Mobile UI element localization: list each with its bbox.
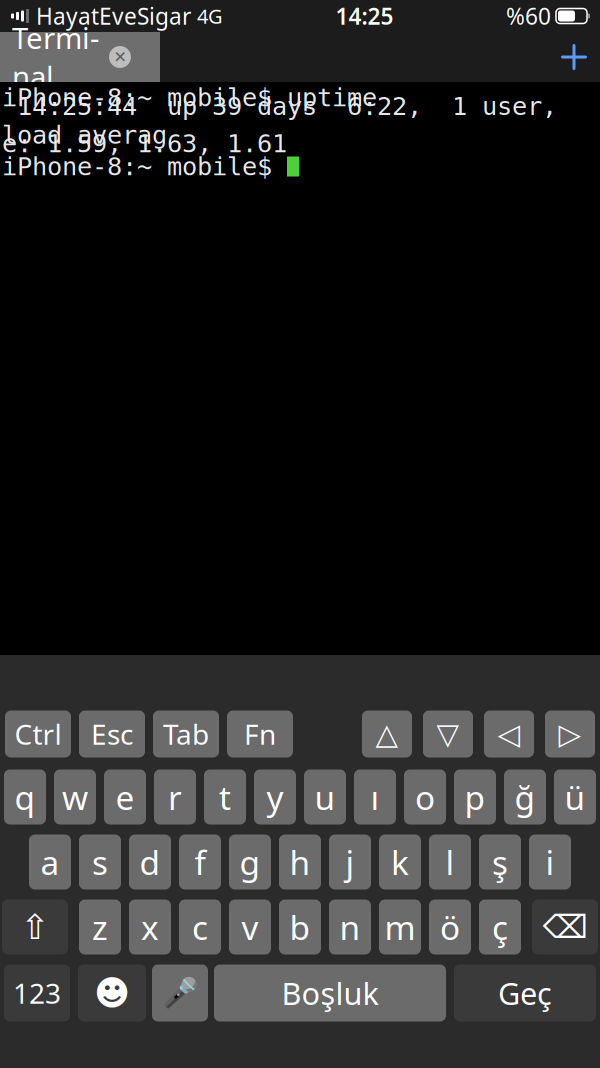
staticText: ⇧ <box>20 907 49 947</box>
staticText: 🎤 <box>161 976 198 1010</box>
staticText: Terminal <box>12 18 99 96</box>
staticText: v <box>241 905 258 949</box>
button[interactable]: Terminal <box>0 32 160 82</box>
staticText: ç <box>492 905 508 949</box>
staticText: o <box>415 775 435 819</box>
button[interactable]: ğ <box>504 769 546 824</box>
staticText: f <box>194 840 205 884</box>
button[interactable]: Esc <box>79 710 145 757</box>
button[interactable]: b <box>279 899 321 954</box>
staticText: t <box>219 775 231 819</box>
button[interactable]: z <box>79 899 121 954</box>
staticText: y <box>266 775 283 819</box>
staticText: 123 <box>13 974 61 1012</box>
staticText: 14:25 <box>335 1 393 31</box>
staticText: d <box>139 840 160 884</box>
staticText: l <box>445 840 454 884</box>
button[interactable]: ö <box>429 899 471 954</box>
staticText: ▷ <box>558 717 581 751</box>
staticText: c <box>192 905 208 949</box>
button[interactable]: New tab <box>548 32 600 82</box>
button[interactable]: ç <box>479 899 521 954</box>
staticText: %60 <box>506 1 551 31</box>
staticText: Fn <box>244 715 276 753</box>
button[interactable]: Ctrl <box>5 710 71 757</box>
staticText: Esc <box>91 715 133 753</box>
staticText: j <box>345 840 354 884</box>
staticText: HayatEveSigar <box>36 1 191 31</box>
button[interactable]: a <box>29 834 71 889</box>
staticText: q <box>14 775 35 819</box>
button[interactable]: n <box>329 899 371 954</box>
button[interactable]: q <box>4 769 46 824</box>
button[interactable]: Up <box>362 710 412 757</box>
button[interactable]: y <box>254 769 296 824</box>
button[interactable]: Fn <box>227 710 293 757</box>
button[interactable]: k <box>379 834 421 889</box>
button[interactable]: Delete <box>532 899 598 954</box>
button[interactable]: p <box>454 769 496 824</box>
button[interactable]: Tab <box>153 710 219 757</box>
button[interactable]: i <box>529 834 571 889</box>
button[interactable]: t <box>204 769 246 824</box>
staticText: z <box>92 905 108 949</box>
button[interactable]: h <box>279 834 321 889</box>
button[interactable]: m <box>379 899 421 954</box>
button[interactable]: Dictation <box>152 964 208 1021</box>
staticText: m <box>384 905 415 949</box>
staticText: Ctrl <box>14 715 61 753</box>
button[interactable]: c <box>179 899 221 954</box>
staticText: ⌫ <box>542 909 587 945</box>
button[interactable]: 123 <box>4 964 70 1021</box>
button[interactable]: Shift <box>2 899 68 954</box>
button[interactable]: Left <box>484 710 534 757</box>
staticText: ğ <box>514 775 535 819</box>
button[interactable]: v <box>229 899 271 954</box>
staticText: b <box>289 905 310 949</box>
button[interactable]: s <box>79 834 121 889</box>
staticText: g <box>239 840 260 884</box>
staticText: ş <box>492 840 508 884</box>
staticText: Geç <box>498 973 552 1013</box>
staticText: i <box>545 840 554 884</box>
staticText: iPhone-8:~ mobile$ <box>2 152 287 181</box>
staticText: u <box>314 775 335 819</box>
button[interactable]: l <box>429 834 471 889</box>
staticText: ö <box>440 905 460 949</box>
staticText: n <box>339 905 360 949</box>
button[interactable]: j <box>329 834 371 889</box>
staticText: p <box>464 775 485 819</box>
button[interactable]: Geç <box>454 964 596 1021</box>
button[interactable]: ü <box>554 769 596 824</box>
staticText: iPhone-8:~ mobile$ uptime <box>2 83 377 112</box>
staticText: k <box>391 840 409 884</box>
button[interactable]: ı <box>354 769 396 824</box>
button[interactable]: ş <box>479 834 521 889</box>
staticText: ◁ <box>497 717 520 751</box>
staticText: x <box>141 905 159 949</box>
button[interactable]: g <box>229 834 271 889</box>
staticText: Tab <box>163 715 209 753</box>
button[interactable]: r <box>154 769 196 824</box>
button[interactable]: e <box>104 769 146 824</box>
button[interactable]: Down <box>423 710 473 757</box>
staticText: r <box>168 775 182 819</box>
button[interactable]: d <box>129 834 171 889</box>
button[interactable]: x <box>129 899 171 954</box>
staticText: e: 1.59, 1.63, 1.61 <box>2 129 287 158</box>
staticText: 4G <box>197 3 223 29</box>
button[interactable]: Emoji <box>78 964 146 1021</box>
button[interactable]: Boşluk <box>214 964 446 1021</box>
staticText: a <box>40 840 59 884</box>
button[interactable]: w <box>54 769 96 824</box>
button[interactable]: u <box>304 769 346 824</box>
staticText: h <box>289 840 310 884</box>
staticText: e <box>115 775 134 819</box>
button[interactable]: Right <box>545 710 595 757</box>
staticText: ✕ <box>113 48 126 66</box>
button[interactable]: o <box>404 769 446 824</box>
button[interactable]: f <box>179 834 221 889</box>
staticText: 14:25:44 up 39 days 6:22, 1 user, load a… <box>2 92 572 149</box>
staticText: w <box>62 775 88 819</box>
staticText: ü <box>564 775 585 819</box>
